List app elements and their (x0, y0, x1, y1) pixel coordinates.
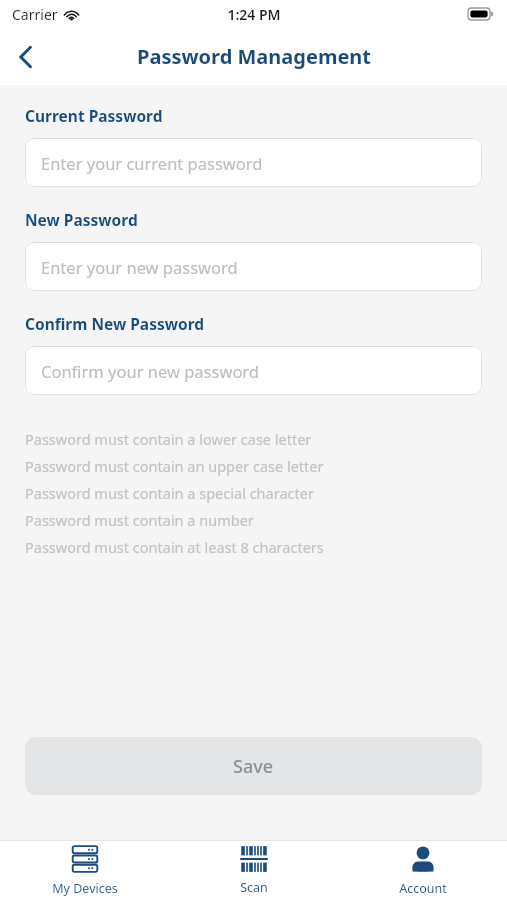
staticText: Scan (240, 879, 268, 896)
button[interactable]: Enter your current password (25, 138, 482, 187)
staticText: Account (399, 880, 447, 897)
staticText: New Password (25, 209, 138, 230)
button[interactable]: Scan (169, 841, 338, 900)
staticText: Confirm New Password (25, 313, 205, 334)
staticText: Password must contain an upper case lett… (25, 456, 324, 476)
button[interactable]: Save (25, 737, 482, 795)
staticText: Password must contain a number (25, 510, 254, 530)
staticText: Enter your new password (41, 256, 238, 278)
staticText: Carrier (12, 5, 58, 24)
staticText: Enter your current password (41, 152, 263, 174)
button[interactable]: Enter your new password (25, 242, 482, 291)
button[interactable]: Back (0, 32, 50, 82)
staticText: Password Management (137, 43, 371, 70)
staticText: Password must contain a special characte… (25, 483, 314, 503)
staticText: Current Password (25, 105, 163, 126)
staticText: Confirm your new password (41, 360, 259, 382)
button[interactable]: Confirm your new password (25, 346, 482, 395)
button[interactable]: My Devices (0, 841, 169, 900)
staticText: Save (233, 754, 274, 779)
staticText: 1:24 PM (227, 5, 281, 24)
staticText: Password must contain at least 8 charact… (25, 537, 324, 557)
button[interactable]: Account (338, 841, 507, 900)
staticText: My Devices (52, 880, 118, 897)
staticText: Password must contain a lower case lette… (25, 429, 312, 449)
